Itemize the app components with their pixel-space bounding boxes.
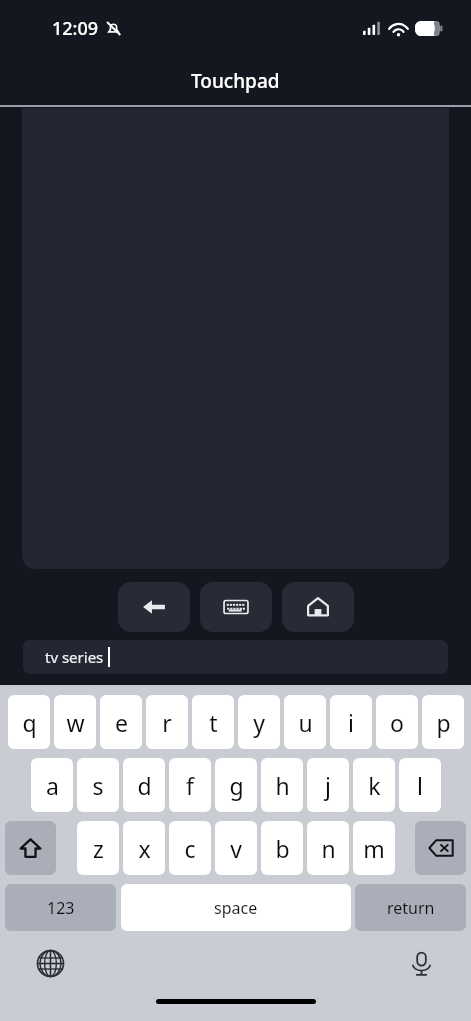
- staticText: z: [93, 833, 104, 864]
- button[interactable]: t: [192, 695, 234, 749]
- staticText: s: [92, 770, 104, 801]
- button[interactable]: q: [8, 695, 50, 749]
- button[interactable]: m: [353, 821, 395, 875]
- staticText: tv series: [45, 647, 104, 667]
- button[interactable]: Voice input: [401, 943, 441, 983]
- staticText: a: [46, 770, 59, 801]
- staticText: k: [368, 770, 381, 801]
- staticText: n: [321, 833, 336, 864]
- staticText: j: [325, 770, 331, 801]
- button[interactable]: d: [123, 758, 165, 812]
- button[interactable]: y: [238, 695, 280, 749]
- button[interactable]: i: [330, 695, 372, 749]
- button[interactable]: tv series: [23, 640, 448, 674]
- staticText: i: [348, 707, 354, 738]
- staticText: p: [436, 707, 451, 738]
- staticText: y: [253, 707, 265, 738]
- button[interactable]: k: [353, 758, 395, 812]
- staticText: q: [22, 707, 37, 738]
- button[interactable]: l: [399, 758, 441, 812]
- button[interactable]: p: [422, 695, 464, 749]
- staticText: f: [186, 770, 194, 801]
- button[interactable]: v: [215, 821, 257, 875]
- button[interactable]: e: [100, 695, 142, 749]
- staticText: l: [417, 770, 423, 801]
- button[interactable]: h: [261, 758, 303, 812]
- button[interactable]: g: [215, 758, 257, 812]
- button[interactable]: s: [77, 758, 119, 812]
- staticText: d: [137, 770, 152, 801]
- staticText: m: [363, 833, 385, 864]
- staticText: space: [214, 897, 258, 919]
- button[interactable]: Back: [118, 582, 190, 632]
- staticText: t: [209, 707, 218, 738]
- staticText: e: [115, 707, 128, 738]
- button[interactable]: Backspace: [415, 821, 466, 875]
- button[interactable]: 123: [5, 884, 116, 931]
- button[interactable]: n: [307, 821, 349, 875]
- staticText: Touchpad: [191, 68, 280, 94]
- button[interactable]: Home: [282, 582, 354, 632]
- staticText: u: [298, 707, 313, 738]
- button[interactable]: c: [169, 821, 211, 875]
- button[interactable]: w: [54, 695, 96, 749]
- staticText: w: [66, 707, 85, 738]
- button[interactable]: j: [307, 758, 349, 812]
- staticText: r: [162, 707, 172, 738]
- button[interactable]: Shift: [5, 821, 56, 875]
- staticText: return: [387, 897, 435, 919]
- staticText: g: [229, 770, 244, 801]
- button[interactable]: u: [284, 695, 326, 749]
- button[interactable]: o: [376, 695, 418, 749]
- button[interactable]: return: [355, 884, 466, 931]
- staticText: c: [184, 833, 196, 864]
- staticText: v: [230, 833, 242, 864]
- staticText: o: [390, 707, 404, 738]
- button[interactable]: Keyboard: [200, 582, 272, 632]
- button[interactable]: b: [261, 821, 303, 875]
- button[interactable]: a: [31, 758, 73, 812]
- button[interactable]: x: [123, 821, 165, 875]
- staticText: h: [275, 770, 290, 801]
- staticText: b: [275, 833, 290, 864]
- staticText: 12:09: [52, 16, 99, 41]
- button[interactable]: z: [77, 821, 119, 875]
- button[interactable]: space: [121, 884, 351, 931]
- button[interactable]: Change keyboard language: [30, 943, 70, 983]
- button[interactable]: r: [146, 695, 188, 749]
- staticText: 123: [47, 897, 75, 919]
- button[interactable]: f: [169, 758, 211, 812]
- staticText: x: [138, 833, 151, 864]
